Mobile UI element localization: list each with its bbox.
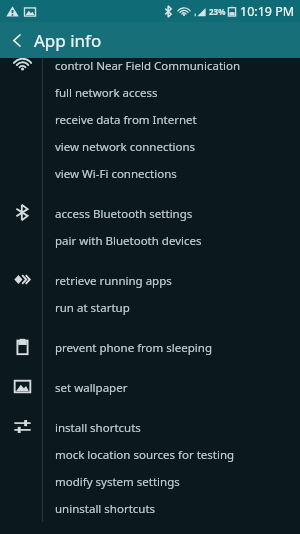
staticText: access Bluetooth settings [55, 206, 193, 222]
button[interactable]: pair with Bluetooth devices [43, 227, 300, 254]
staticText: prevent phone from sleeping [55, 340, 212, 356]
staticText: set wallpaper [55, 380, 128, 396]
staticText: App info [34, 29, 102, 52]
staticText: run at startup [55, 300, 130, 316]
button[interactable]: full network access [43, 79, 300, 106]
staticText: 23% [209, 6, 226, 17]
staticText: install shortcuts [55, 420, 141, 436]
button[interactable]: view Wi-Fi connections [43, 160, 300, 187]
button[interactable]: Navigate up — App info [0, 22, 300, 58]
button[interactable]: access Bluetooth settings [43, 200, 300, 227]
button[interactable]: receive data from Internet [43, 106, 300, 133]
staticText: 10:19 PM [240, 3, 295, 20]
staticText: uninstall shortcuts [55, 501, 156, 517]
button[interactable]: retrieve running apps [43, 267, 300, 294]
button[interactable]: run at startup [43, 294, 300, 321]
staticText: receive data from Internet [55, 112, 197, 128]
staticText: view Wi-Fi connections [55, 166, 177, 182]
staticText: modify system settings [55, 474, 180, 490]
button[interactable]: install shortcuts [43, 414, 300, 441]
staticText: retrieve running apps [55, 273, 172, 289]
button[interactable]: uninstall shortcuts [43, 495, 300, 522]
staticText: control Near Field Communication [55, 58, 241, 74]
staticText: pair with Bluetooth devices [55, 233, 202, 249]
staticText: mock location sources for testing [55, 447, 235, 463]
button[interactable]: view network connections [43, 133, 300, 160]
staticText: view network connections [55, 139, 196, 155]
button[interactable]: mock location sources for testing [43, 441, 300, 468]
button[interactable]: control Near Field Communication [43, 58, 300, 79]
button[interactable]: set wallpaper [43, 374, 300, 401]
button[interactable]: prevent phone from sleeping [43, 334, 300, 361]
staticText: full network access [55, 85, 158, 101]
button[interactable]: modify system settings [43, 468, 300, 495]
